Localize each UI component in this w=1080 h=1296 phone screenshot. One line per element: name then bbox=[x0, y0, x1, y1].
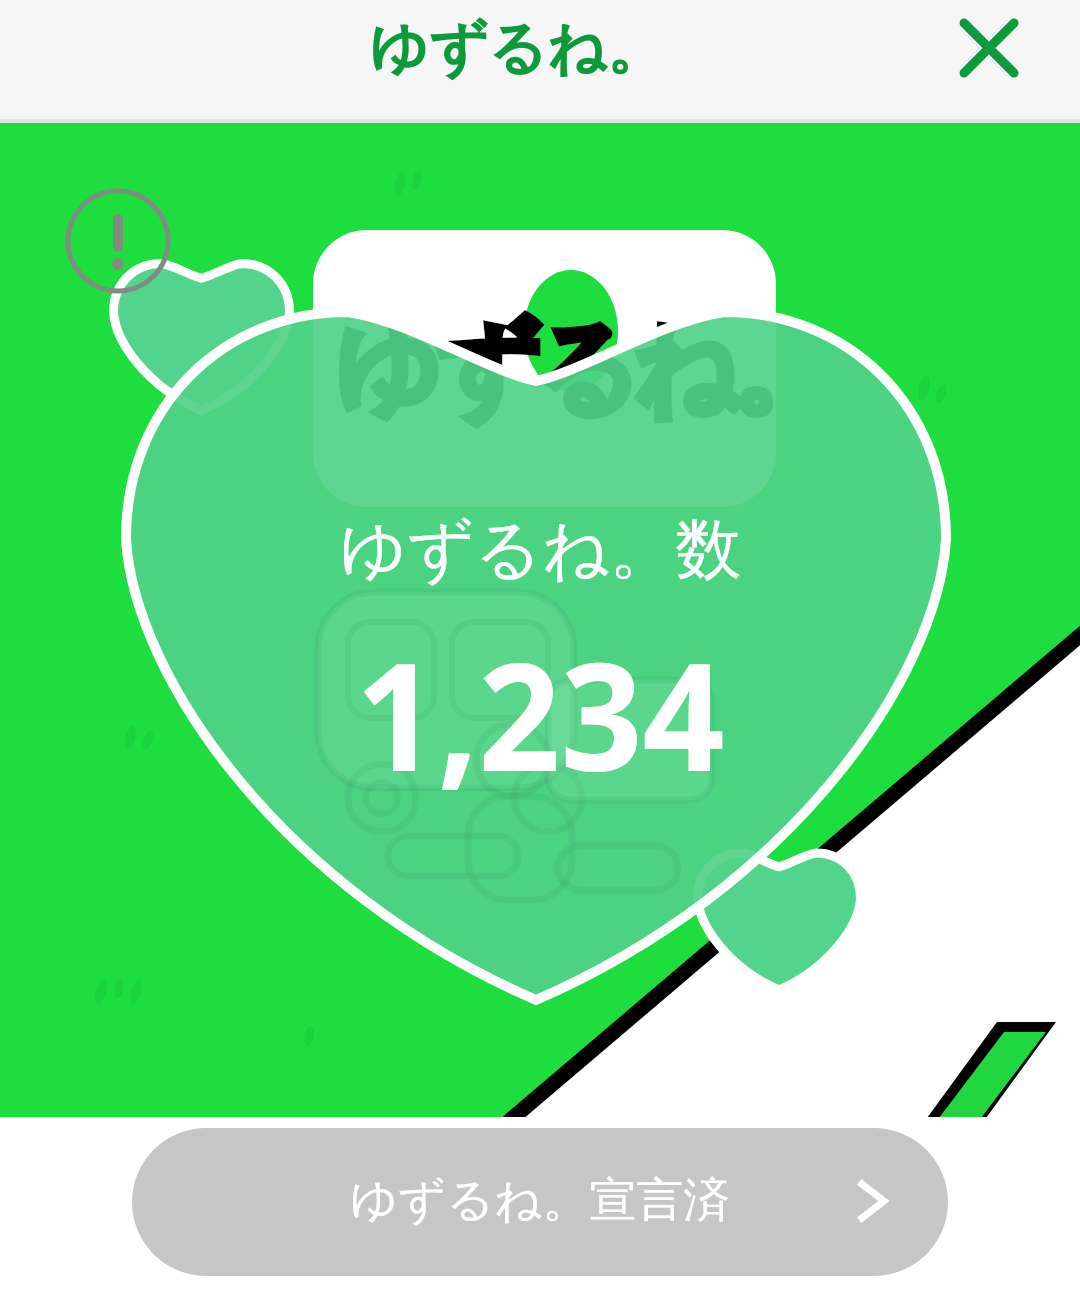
staticText: ゆずるね。宣言済 bbox=[350, 1171, 731, 1230]
button[interactable]: Close bbox=[941, 0, 1037, 96]
staticText: ゆずるね。 bbox=[369, 12, 665, 85]
staticText: ゆずるね。数 bbox=[339, 508, 742, 591]
staticText: 1,234 bbox=[355, 612, 725, 815]
button[interactable]: ゆずるね。宣言済 bbox=[132, 1128, 948, 1276]
staticText: ゆずるね。 bbox=[335, 304, 830, 435]
staticText: ゆずるね。 bbox=[335, 304, 830, 435]
